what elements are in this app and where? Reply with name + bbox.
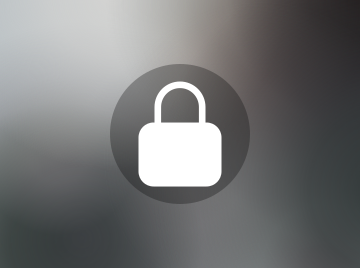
button[interactable]: Unlock to reveal hidden content (110, 64, 250, 204)
